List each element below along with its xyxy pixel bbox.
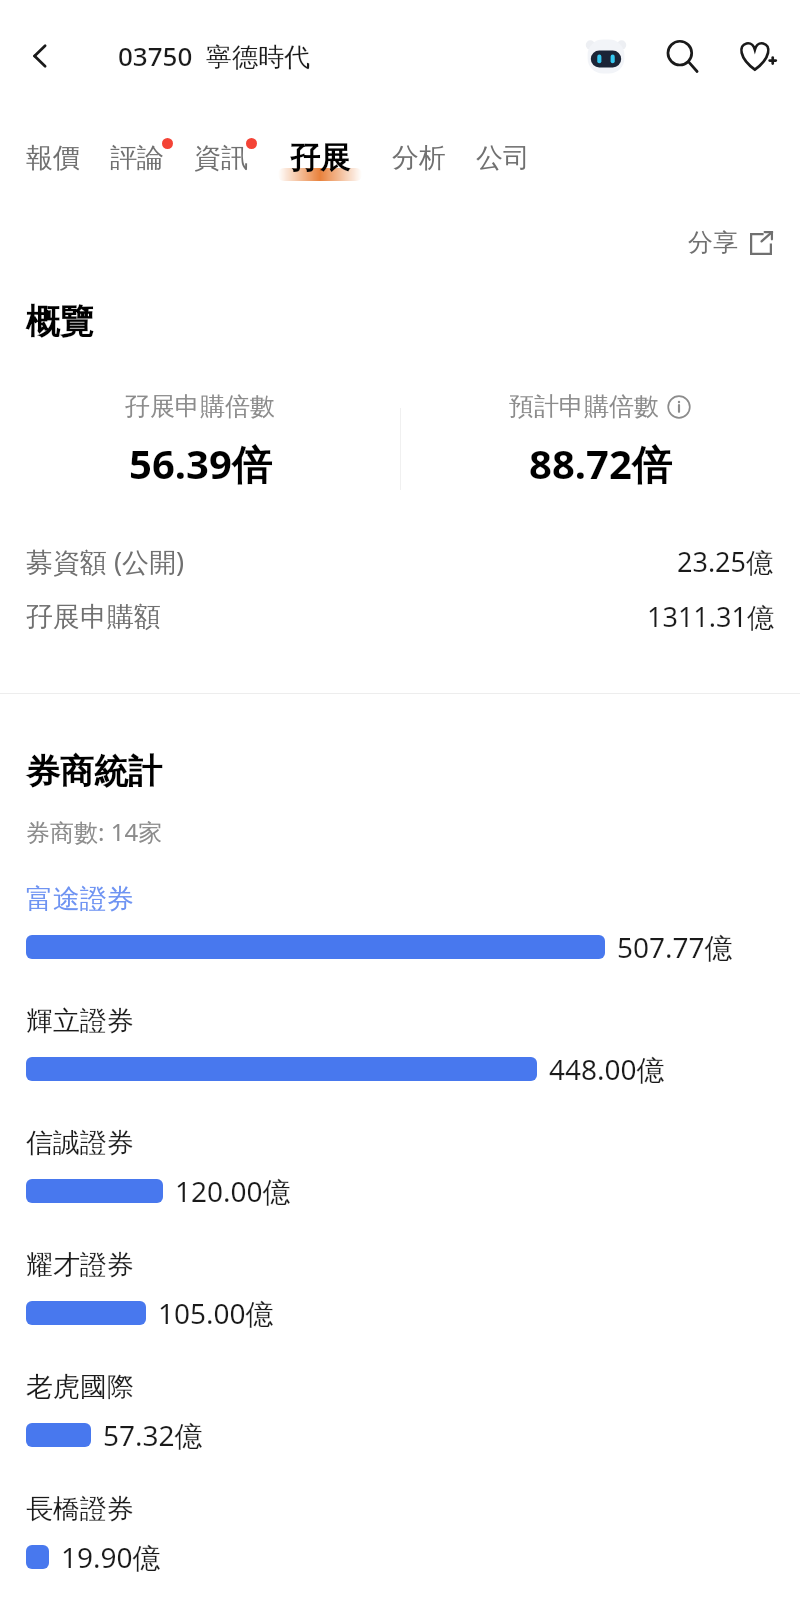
staticText: 信誠證券	[26, 1126, 134, 1160]
staticText: 1311.31億	[647, 598, 774, 635]
staticText: 分享	[688, 227, 738, 258]
staticText: 507.77億	[617, 928, 733, 966]
button[interactable]: 報價	[26, 141, 80, 175]
button[interactable]: 孖展	[278, 139, 362, 177]
staticText: 孖展申購額	[26, 600, 161, 634]
staticText: 448.00億	[549, 1050, 665, 1088]
button[interactable]: AI Assistant	[576, 26, 636, 86]
staticText: 分析	[392, 141, 446, 175]
staticText: 評論	[110, 141, 164, 175]
staticText: 輝立證券	[26, 1004, 134, 1038]
button[interactable]: 富途證券	[0, 882, 800, 1004]
button[interactable]: 老虎國際	[0, 1370, 800, 1492]
staticText: 57.32億	[103, 1416, 203, 1454]
button[interactable]: 孖展申購額	[0, 598, 800, 635]
button[interactable]: 分享	[688, 227, 774, 258]
staticText: 88.72倍	[529, 436, 672, 491]
staticText: 孖展	[290, 139, 350, 177]
staticText: 老虎國際	[26, 1370, 134, 1404]
staticText: 概覽	[26, 300, 94, 343]
staticText: 募資額 (公開)	[26, 543, 185, 580]
button[interactable]: 預計申購倍數	[400, 391, 800, 491]
button[interactable]: 分析	[392, 141, 446, 175]
button[interactable]: 募資額 (公開)	[0, 543, 800, 580]
staticText: 120.00億	[175, 1172, 291, 1210]
staticText: 資訊	[194, 141, 248, 175]
button[interactable]: 長橋證券	[0, 1492, 800, 1614]
button[interactable]: Add to watchlist	[726, 26, 786, 86]
staticText: 長橋證券	[26, 1492, 134, 1526]
staticText: 公司	[476, 141, 530, 175]
button[interactable]: 信誠證券	[0, 1126, 800, 1248]
staticText: 券商統計	[26, 750, 162, 793]
staticText: 富途證券	[26, 882, 134, 916]
button[interactable]: 資訊	[194, 141, 248, 175]
button[interactable]: 公司	[476, 141, 530, 175]
staticText: 03750 寧德時代	[118, 38, 310, 74]
staticText: 105.00億	[158, 1294, 274, 1332]
staticText: 預計申購倍數	[509, 391, 659, 422]
button[interactable]: Back	[8, 24, 72, 88]
staticText: 23.25億	[677, 543, 774, 580]
staticText: 券商數: 14家	[26, 815, 163, 848]
staticText: 56.39倍	[129, 436, 272, 491]
button[interactable]: Search	[652, 26, 712, 86]
button[interactable]: 輝立證券	[0, 1004, 800, 1126]
staticText: 19.90億	[61, 1538, 161, 1576]
staticText: 耀才證券	[26, 1248, 134, 1282]
staticText: 報價	[26, 141, 80, 175]
button[interactable]: 耀才證券	[0, 1248, 800, 1370]
button[interactable]: 評論	[110, 141, 164, 175]
button[interactable]: 孖展申購倍數	[0, 391, 400, 491]
staticText: 孖展申購倍數	[125, 391, 275, 422]
